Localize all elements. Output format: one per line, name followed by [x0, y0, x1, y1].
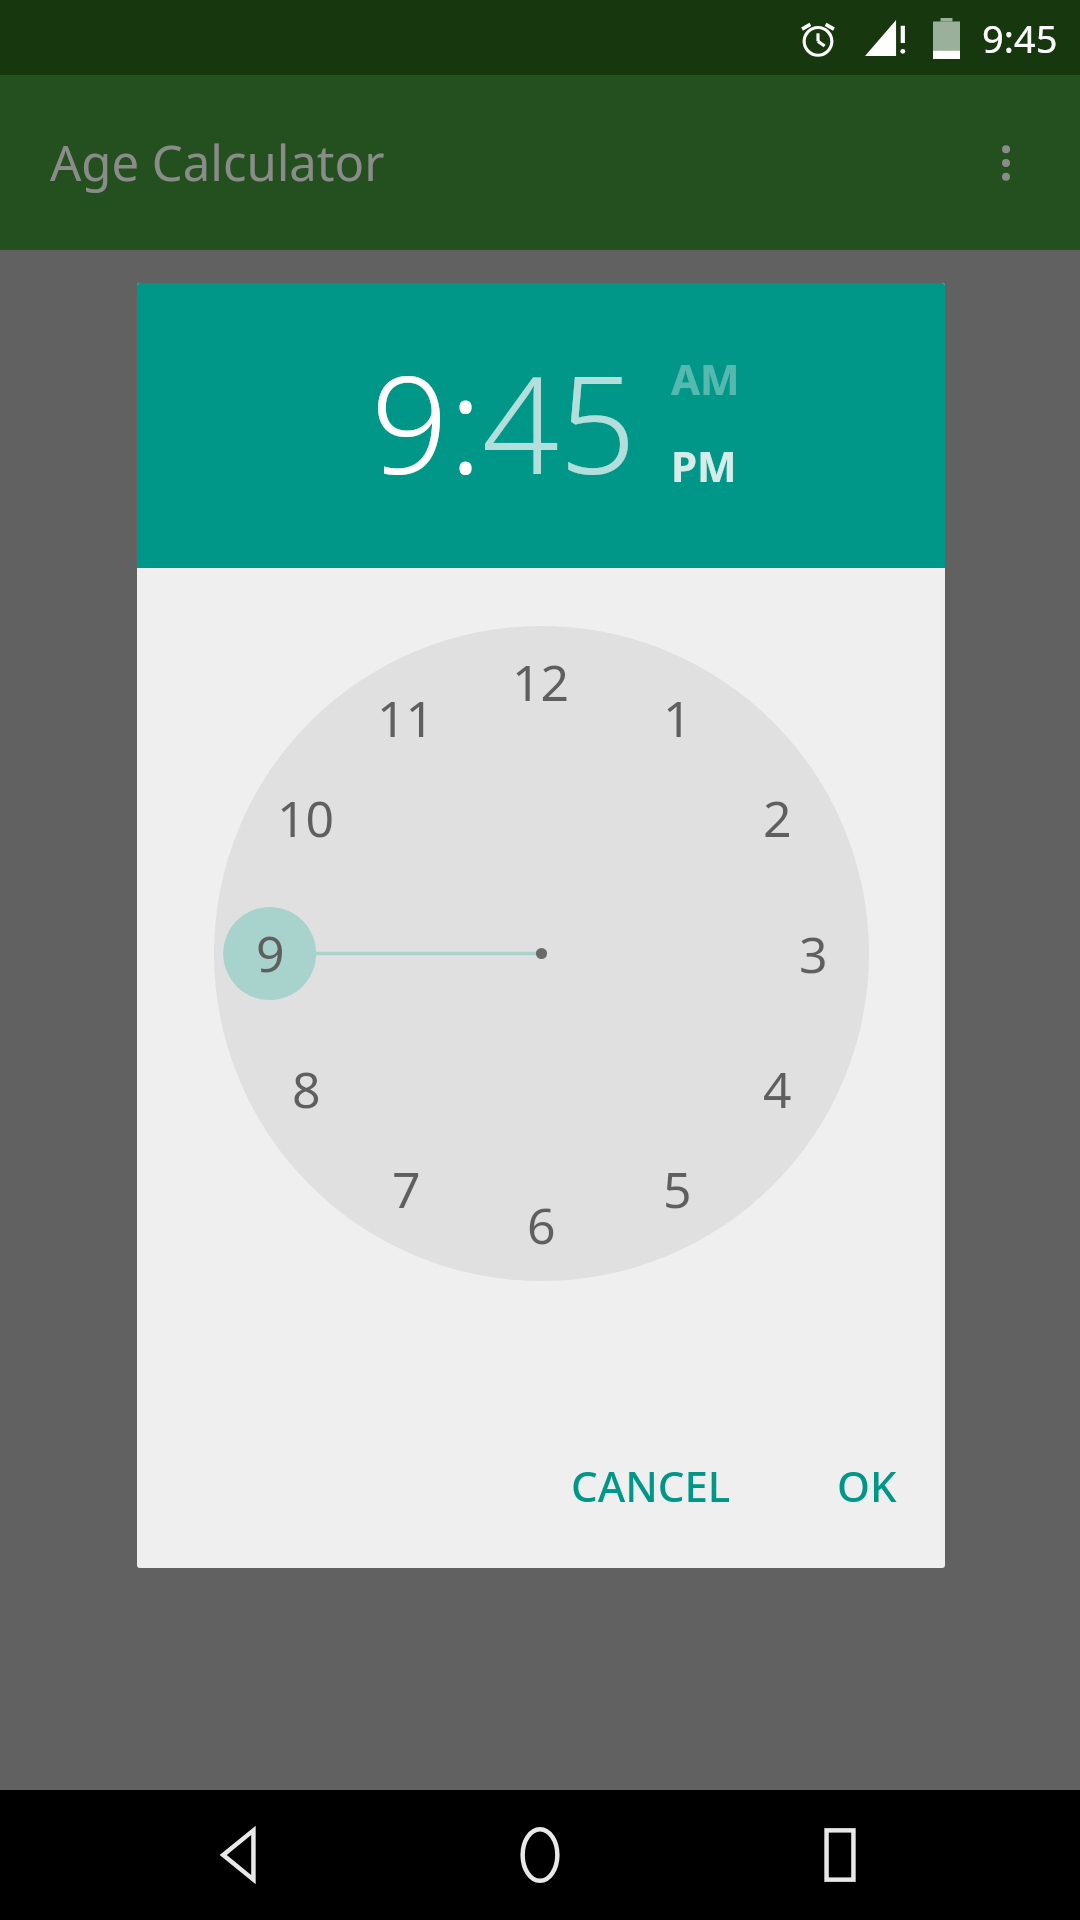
- button[interactable]: 11: [358, 678, 454, 758]
- button[interactable]: OK: [815, 1439, 919, 1532]
- staticText: 6: [527, 1191, 556, 1259]
- button[interactable]: 2: [729, 778, 825, 858]
- staticText: AM: [671, 350, 740, 407]
- button[interactable]: 1: [629, 678, 725, 758]
- button[interactable]: CANCEL: [549, 1439, 753, 1532]
- staticText: 9: [371, 330, 449, 514]
- button[interactable]: 5: [629, 1149, 725, 1229]
- button[interactable]: AM: [671, 350, 740, 407]
- button[interactable]: 8: [258, 1049, 354, 1129]
- button[interactable]: 9: [371, 330, 449, 514]
- button[interactable]: 45: [482, 330, 637, 514]
- button[interactable]: 7: [358, 1149, 454, 1229]
- button[interactable]: Back: [180, 1795, 300, 1915]
- staticText: 7: [392, 1155, 421, 1223]
- staticText: 2: [763, 784, 792, 852]
- staticText: 9: [256, 919, 285, 987]
- staticText: CANCEL: [571, 1457, 731, 1514]
- button[interactable]: Recent apps: [780, 1795, 900, 1915]
- button[interactable]: PM: [671, 437, 737, 494]
- staticText: 9:45: [982, 12, 1058, 64]
- staticText: 1: [663, 684, 692, 752]
- staticText: 10: [277, 784, 335, 852]
- staticText: 4: [763, 1055, 792, 1123]
- staticText: :: [449, 330, 482, 514]
- staticText: 12: [512, 648, 570, 716]
- button[interactable]: 6: [493, 1185, 589, 1265]
- staticText: Age Calculator: [50, 129, 385, 196]
- button[interactable]: 12: [493, 642, 589, 722]
- staticText: 8: [292, 1055, 321, 1123]
- staticText: 45: [482, 330, 637, 514]
- staticText: PM: [671, 437, 737, 494]
- staticText: 11: [377, 684, 435, 752]
- button[interactable]: 4: [729, 1049, 825, 1129]
- button[interactable]: 3: [765, 914, 861, 994]
- button[interactable]: Home: [480, 1795, 600, 1915]
- button[interactable]: More options: [956, 113, 1056, 213]
- button[interactable]: 9: [222, 913, 318, 993]
- staticText: 3: [799, 920, 828, 988]
- button[interactable]: 10: [258, 778, 354, 858]
- staticText: OK: [837, 1457, 897, 1514]
- staticText: 5: [663, 1155, 692, 1223]
